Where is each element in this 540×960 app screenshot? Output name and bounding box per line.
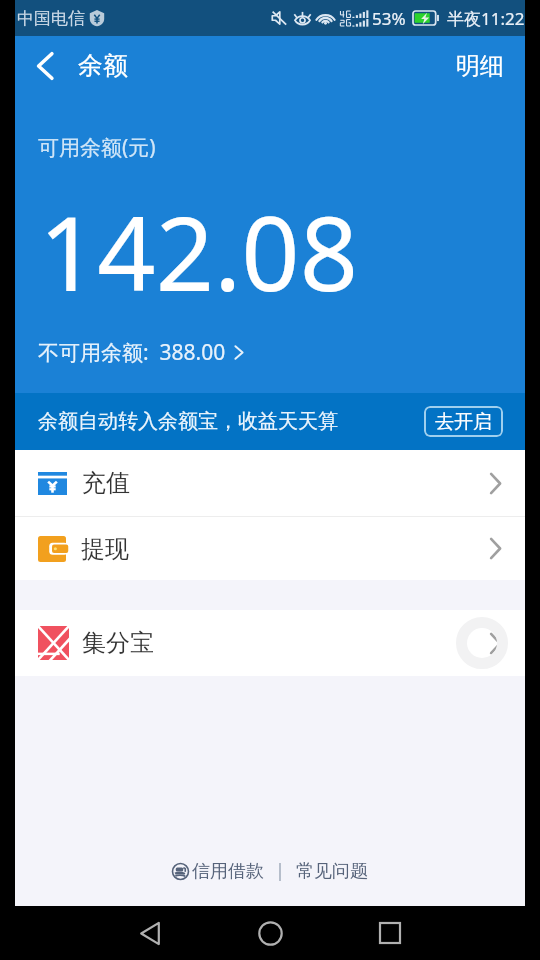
button[interactable]: 集分宝 bbox=[15, 610, 525, 676]
staticText: 提现 bbox=[81, 534, 129, 564]
staticText: 半夜11:22 bbox=[447, 7, 525, 30]
staticText: 常见问题 bbox=[296, 860, 368, 883]
button[interactable]: Recents bbox=[330, 906, 450, 960]
button[interactable]: Home bbox=[210, 906, 330, 960]
staticText: 明细 bbox=[456, 51, 504, 81]
button[interactable]: Back bbox=[90, 906, 210, 960]
button[interactable]: 信用借款 bbox=[170, 855, 266, 888]
staticText: 余额 bbox=[78, 50, 128, 81]
button[interactable]: 充值 bbox=[15, 450, 525, 516]
button[interactable]: 提现 bbox=[15, 517, 525, 580]
button[interactable]: 明细 bbox=[435, 39, 525, 93]
staticText: 142.08 bbox=[39, 182, 359, 321]
staticText: 去开启 bbox=[435, 410, 492, 434]
staticText: 中国电信 bbox=[17, 8, 85, 29]
staticText: 不可用余额: 388.00 bbox=[38, 338, 226, 367]
button[interactable]: 常见问题 bbox=[294, 855, 370, 888]
staticText: 集分宝 bbox=[82, 628, 154, 658]
staticText: 可用余额(元) bbox=[38, 133, 156, 162]
staticText: 53% bbox=[372, 7, 406, 30]
staticText: 信用借款 bbox=[192, 860, 264, 883]
staticText: 余额自动转入余额宝，收益天天算 bbox=[38, 409, 338, 434]
button[interactable]: Back bbox=[15, 36, 71, 95]
staticText: 充值 bbox=[82, 468, 130, 498]
button[interactable]: 去开启 bbox=[424, 406, 503, 437]
